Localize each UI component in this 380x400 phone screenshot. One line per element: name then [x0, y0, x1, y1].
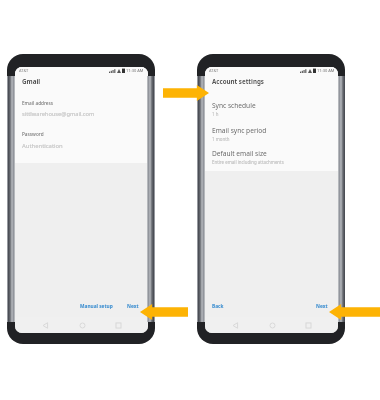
staticText: Back — [212, 303, 224, 310]
staticText: Authentication — [22, 142, 63, 150]
button[interactable]: Sync schedule — [205, 101, 338, 124]
button[interactable]: Back — [228, 318, 242, 332]
staticText: AT&T — [209, 68, 219, 73]
staticText: Email sync period — [212, 126, 267, 135]
staticText: AT&T — [19, 68, 29, 73]
staticText: Entire email including attachments — [212, 159, 284, 165]
button[interactable]: Back — [210, 301, 226, 312]
staticText: Manual setup — [80, 303, 113, 310]
button[interactable]: Default email size — [205, 149, 338, 172]
button[interactable]: Home — [75, 318, 89, 332]
staticText: Default email size — [212, 149, 267, 158]
staticText: Password — [22, 131, 44, 137]
button[interactable]: Email sync period — [205, 126, 338, 149]
staticText: 11:30 AM — [317, 68, 335, 73]
staticText: Next — [316, 303, 328, 310]
staticText: 11:30 AM — [126, 68, 144, 73]
button[interactable]: Next — [314, 301, 330, 312]
staticText: Email address — [22, 100, 54, 106]
button[interactable]: Next — [125, 301, 141, 312]
button[interactable]: Recent apps — [301, 318, 315, 332]
staticText: 1 h — [212, 111, 219, 117]
button[interactable]: Back — [38, 318, 52, 332]
staticText: 1 month — [212, 136, 230, 142]
staticText: Next — [127, 303, 139, 310]
staticText: Sync schedule — [212, 101, 256, 110]
staticText: Account settings — [212, 77, 264, 85]
staticText: sittlwarehouse@gmail.com — [22, 110, 95, 118]
button[interactable]: Manual setup — [78, 301, 115, 312]
button[interactable]: Home — [265, 318, 279, 332]
button[interactable]: Recent apps — [111, 318, 125, 332]
staticText: Gmail — [22, 77, 41, 86]
